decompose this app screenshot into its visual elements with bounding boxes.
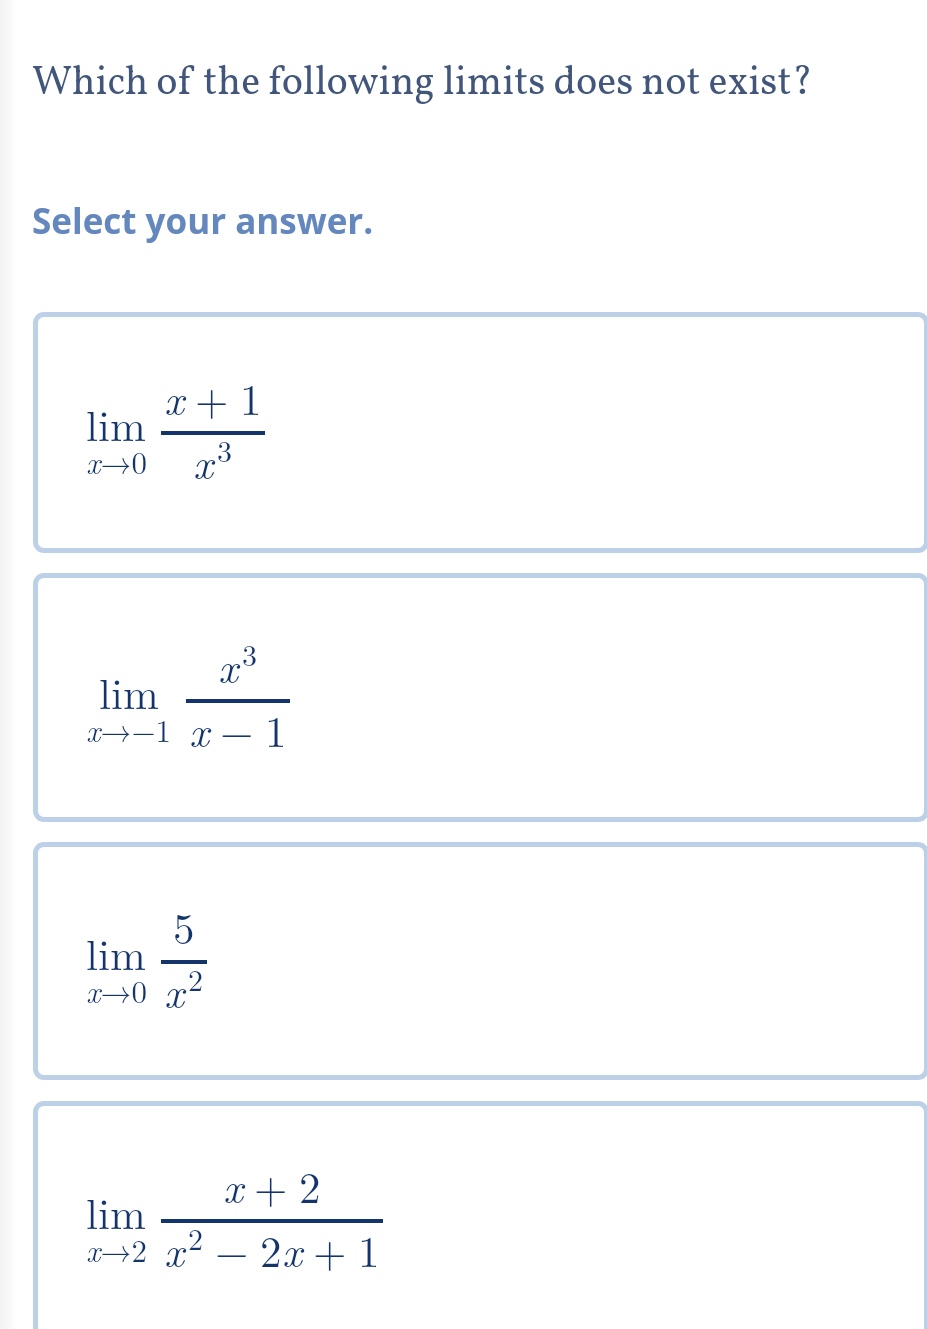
- staticText: x→0: [86, 968, 147, 1012]
- staticText: 1: [240, 367, 262, 428]
- staticText: 2: [299, 1155, 321, 1216]
- staticText: x: [282, 1219, 302, 1280]
- staticText: 2: [188, 1216, 204, 1259]
- staticText: 3: [217, 428, 233, 471]
- staticText: lim: [86, 393, 146, 454]
- staticText: x: [223, 1155, 243, 1216]
- staticText: 3: [242, 632, 258, 675]
- staticText: x: [189, 699, 209, 760]
- button[interactable]: lim: [33, 312, 927, 553]
- staticText: Select your answer.: [32, 197, 374, 245]
- staticText: x→2: [86, 1227, 147, 1271]
- staticText: x→−1: [86, 707, 172, 751]
- staticText: lim: [86, 1181, 146, 1242]
- staticText: x: [164, 367, 184, 428]
- staticText: 1: [358, 1219, 380, 1280]
- staticText: Which of the following limits does not e…: [32, 56, 813, 112]
- staticText: 2: [260, 1219, 282, 1280]
- staticText: x: [218, 635, 238, 696]
- staticText: x: [164, 1219, 184, 1280]
- staticText: 5: [173, 896, 195, 957]
- staticText: −: [215, 1219, 249, 1280]
- staticText: +: [195, 367, 229, 428]
- staticText: 1: [265, 699, 287, 760]
- staticText: lim: [99, 661, 159, 722]
- staticText: −: [220, 699, 254, 760]
- button[interactable]: lim: [33, 842, 927, 1080]
- button[interactable]: lim: [33, 573, 927, 822]
- button[interactable]: lim: [33, 1101, 927, 1329]
- staticText: x: [164, 960, 184, 1021]
- staticText: +: [254, 1155, 288, 1216]
- staticText: 2: [188, 957, 204, 1000]
- staticText: lim: [86, 922, 146, 983]
- staticText: x→0: [86, 439, 147, 483]
- staticText: x: [193, 431, 213, 492]
- staticText: +: [313, 1219, 347, 1280]
